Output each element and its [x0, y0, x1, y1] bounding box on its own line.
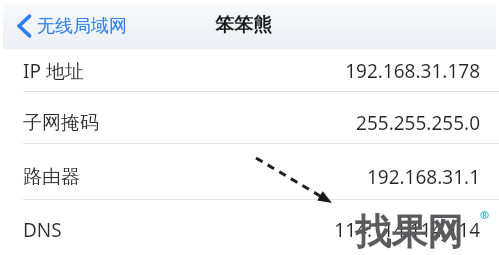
staticText: 无线局域网 [37, 15, 127, 38]
staticText: 找果网 [355, 209, 463, 254]
staticText: 笨笨熊 [215, 13, 272, 37]
button[interactable]: IP 地址 [0, 51, 499, 91]
staticText: IP 地址 [23, 58, 84, 84]
staticText: 子网掩码 [23, 111, 99, 135]
staticText: 路由器 [23, 165, 80, 189]
button[interactable]: DNS [0, 207, 499, 253]
staticText: 192.168.31.1 [366, 164, 480, 190]
button[interactable]: 路由器 [0, 155, 499, 199]
button[interactable]: Back to 无线局域网 [12, 4, 160, 49]
button[interactable]: 子网掩码 [0, 103, 499, 143]
staticText: 114.114.114.114 [334, 217, 480, 243]
staticText: DNS [23, 217, 62, 243]
staticText: 255.255.255.0 [356, 110, 480, 136]
staticText: 192.168.31.178 [345, 58, 480, 84]
staticText: ® [480, 207, 490, 222]
